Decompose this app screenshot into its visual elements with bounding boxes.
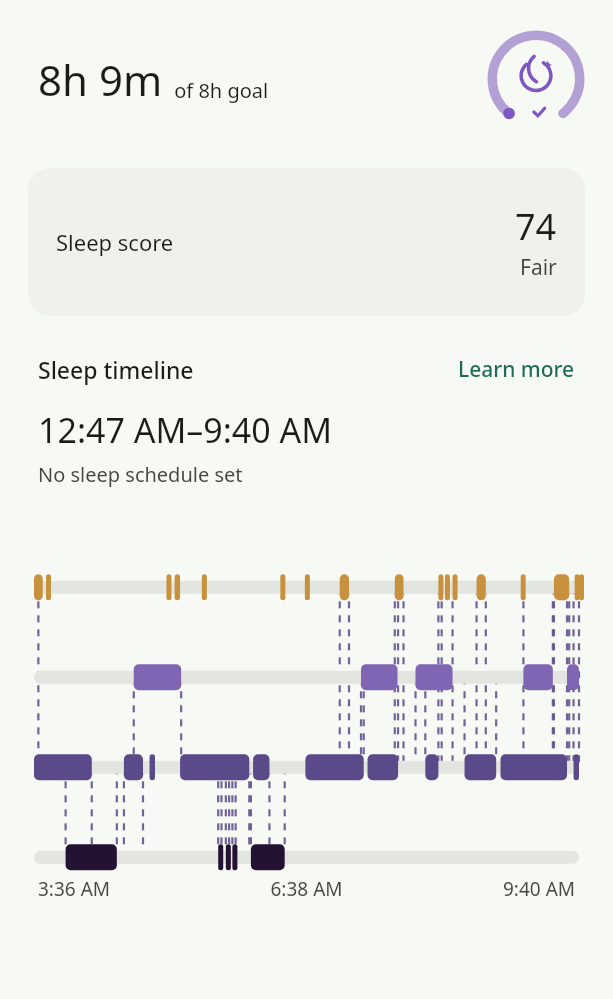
staticText: 74	[515, 202, 557, 251]
staticText: 8h 9m	[38, 51, 163, 108]
staticText: No sleep schedule set	[38, 461, 243, 488]
staticText: Sleep timeline	[38, 354, 458, 385]
staticText: Learn more	[458, 355, 575, 384]
staticText: 6:38 AM	[217, 876, 396, 902]
staticText: Sleep score	[56, 227, 174, 257]
staticText: 9:40 AM	[396, 876, 575, 902]
button[interactable]: Learn more	[458, 355, 575, 384]
staticText: 12:47 AM–9:40 AM	[38, 407, 333, 453]
staticText: 3:36 AM	[38, 876, 217, 902]
button[interactable]: Sleep goal progress	[481, 24, 591, 134]
button[interactable]: Sleep score	[28, 168, 585, 316]
staticText: Fair	[520, 253, 557, 282]
staticText: of 8h goal	[169, 77, 269, 104]
